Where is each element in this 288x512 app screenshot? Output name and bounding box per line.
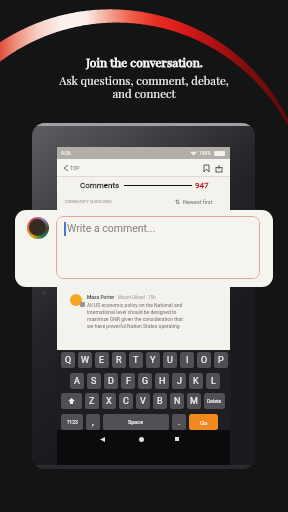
button[interactable]: Share	[214, 163, 224, 173]
button[interactable]: U	[163, 352, 177, 368]
button[interactable]: K	[189, 373, 203, 389]
button[interactable]: L	[206, 373, 220, 389]
button[interactable]: Recents	[171, 433, 183, 445]
button[interactable]: V	[136, 393, 150, 409]
staticText: C	[123, 396, 129, 407]
staticText: ,	[92, 417, 94, 428]
staticText: ⇅	[175, 198, 181, 205]
button[interactable]: Space	[103, 414, 169, 430]
staticText: ?123	[67, 419, 78, 425]
button[interactable]: .	[172, 414, 186, 430]
staticText: Write a comment...	[67, 222, 156, 234]
staticText: Comments	[80, 181, 120, 190]
button[interactable]: Delete	[204, 393, 225, 409]
staticText: B	[157, 396, 163, 407]
button[interactable]: Write a comment...	[56, 216, 260, 279]
staticText: TOP	[70, 165, 80, 171]
staticText: 9:06	[61, 150, 71, 156]
staticText: X	[106, 396, 112, 407]
staticText: R	[116, 355, 122, 366]
staticText: N	[174, 396, 181, 407]
button[interactable]: T	[129, 352, 143, 368]
button[interactable]: ⇅	[175, 198, 213, 205]
staticText: Z	[89, 396, 95, 407]
staticText: I	[186, 355, 189, 366]
button[interactable]: D	[104, 373, 118, 389]
staticText: K	[193, 376, 199, 387]
staticText: E	[99, 355, 105, 366]
button[interactable]: P	[214, 352, 228, 368]
button[interactable]: I	[180, 352, 194, 368]
staticText: W	[81, 355, 89, 366]
button[interactable]: S	[87, 373, 101, 389]
button[interactable]: F	[121, 373, 135, 389]
staticText: 947	[195, 181, 209, 190]
staticText: COMMUNITY GUIDELINES	[65, 199, 112, 204]
button[interactable]: W	[78, 352, 92, 368]
button[interactable]: ,	[86, 414, 100, 430]
button[interactable]: Go	[189, 414, 218, 430]
staticText: Ask questions, comment, debate, and conn…	[59, 73, 229, 101]
button[interactable]: Shift	[61, 393, 82, 409]
button[interactable]: R	[112, 352, 126, 368]
button[interactable]: N	[170, 393, 184, 409]
button[interactable]: Home	[135, 433, 147, 445]
staticText: V	[140, 396, 146, 407]
staticText: Y	[150, 355, 156, 366]
staticText: Q	[65, 355, 72, 366]
staticText: O	[201, 355, 208, 366]
staticText: P	[218, 355, 224, 366]
staticText: Newest first	[183, 199, 213, 205]
staticText: H	[159, 376, 166, 387]
staticText: Mount Gilead · 15h	[118, 295, 156, 300]
button[interactable]: Back	[96, 433, 108, 445]
button[interactable]: ?123	[61, 414, 83, 430]
button[interactable]: E	[95, 352, 109, 368]
button[interactable]: M	[187, 393, 201, 409]
staticText: Mass Porter	[87, 294, 115, 300]
staticText: G	[142, 376, 149, 387]
button[interactable]: Y	[146, 352, 160, 368]
staticText: D	[108, 376, 114, 387]
button[interactable]: X	[102, 393, 116, 409]
staticText: Go	[200, 419, 208, 426]
staticText: A	[74, 376, 80, 387]
staticText: S	[91, 376, 97, 387]
button[interactable]: C	[119, 393, 133, 409]
button[interactable]: H	[155, 373, 169, 389]
staticText: F	[126, 376, 131, 387]
button[interactable]: G	[138, 373, 152, 389]
staticText: Delete	[207, 398, 222, 404]
staticText: .	[178, 417, 181, 428]
button[interactable]: J	[172, 373, 186, 389]
staticText: 100%	[199, 150, 212, 156]
staticText: U	[167, 355, 173, 366]
button[interactable]: O	[197, 352, 211, 368]
staticText: L	[211, 376, 216, 387]
button[interactable]: Bookmark	[201, 163, 211, 173]
button[interactable]: A	[70, 373, 84, 389]
staticText: J	[177, 376, 182, 387]
button[interactable]: Q	[61, 352, 75, 368]
button[interactable]: B	[153, 393, 167, 409]
staticText: T	[133, 355, 139, 366]
staticText: Space	[128, 419, 144, 425]
staticText: Join the conversation.	[86, 54, 203, 70]
staticText: M	[190, 396, 198, 407]
staticText: All US economic policy on the National a…	[87, 302, 183, 329]
button[interactable]: Z	[85, 393, 99, 409]
button[interactable]: TOP	[62, 163, 82, 173]
